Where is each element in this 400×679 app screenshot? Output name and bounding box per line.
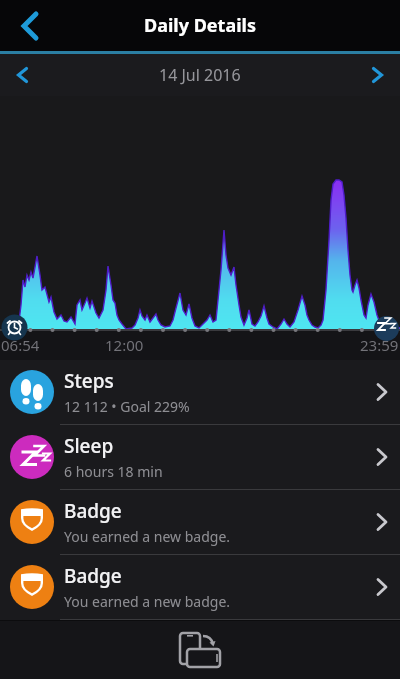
button[interactable]: [174, 624, 226, 676]
button[interactable]: Steps: [0, 360, 400, 425]
button[interactable]: [12, 8, 48, 44]
staticText: You earned a new badge.: [64, 527, 231, 546]
staticText: 23:59: [360, 335, 399, 355]
staticText: 12:00: [105, 335, 144, 355]
staticText: 14 Jul 2016: [159, 64, 241, 86]
button[interactable]: Badge: [0, 555, 400, 620]
button[interactable]: [6, 59, 38, 91]
staticText: 6 hours 18 min: [64, 462, 163, 481]
staticText: You earned a new badge.: [64, 592, 231, 611]
staticText: Sleep: [64, 433, 114, 459]
staticText: 06:54: [1, 335, 40, 355]
staticText: Steps: [64, 368, 114, 394]
staticText: Badge: [64, 563, 122, 589]
button[interactable]: [362, 59, 394, 91]
staticText: Badge: [64, 498, 122, 524]
staticText: 12 112 • Goal 229%: [64, 397, 190, 416]
button[interactable]: Sleep: [0, 425, 400, 490]
button[interactable]: Badge: [0, 490, 400, 555]
staticText: Daily Details: [144, 13, 256, 38]
